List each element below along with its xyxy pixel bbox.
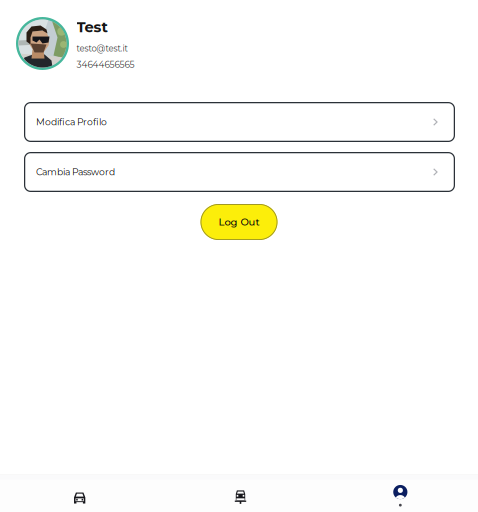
button[interactable]: Cars	[0, 474, 159, 512]
button[interactable]: Modifica Profilo	[24, 102, 455, 142]
staticText: 34644656565	[76, 59, 134, 70]
staticText: Log Out	[218, 216, 259, 228]
staticText: Modifica Profilo	[36, 116, 107, 128]
button[interactable]: Profile	[319, 474, 478, 512]
staticText: testo@test.it	[76, 43, 127, 54]
button[interactable]: Log Out	[200, 204, 277, 240]
staticText: Cambia Password	[36, 166, 115, 178]
button[interactable]: Cambia Password	[24, 152, 455, 192]
button[interactable]: Transit	[159, 474, 319, 512]
staticText: Test	[76, 18, 107, 36]
